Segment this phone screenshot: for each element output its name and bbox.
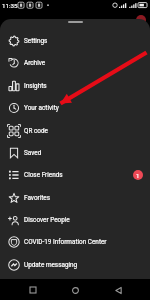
- staticText: Close Friends: [24, 171, 63, 179]
- button[interactable]: Discover People: [0, 209, 150, 231]
- button[interactable]: Settings: [0, 30, 150, 52]
- button[interactable]: Your activity: [0, 97, 150, 119]
- staticText: QR code: [24, 127, 48, 135]
- button[interactable]: Home: [65, 280, 85, 300]
- button[interactable]: QR code: [0, 120, 150, 142]
- button[interactable]: Insights: [0, 75, 150, 97]
- staticText: 1: [136, 172, 140, 179]
- staticText: Discover People: [24, 216, 70, 224]
- staticText: Your activity: [24, 104, 59, 112]
- button[interactable]: Recents: [23, 280, 43, 300]
- button[interactable]: Back: [108, 280, 128, 300]
- button[interactable]: COVID-19 Information Center: [0, 231, 150, 253]
- staticText: Update messaging: [24, 261, 78, 269]
- staticText: Insights: [24, 82, 47, 90]
- button[interactable]: Favorites: [0, 187, 150, 209]
- button[interactable]: Update messaging: [0, 254, 150, 276]
- button[interactable]: Close Friends: [0, 164, 150, 186]
- button[interactable]: Archive: [0, 52, 150, 74]
- staticText: 11:35: [2, 2, 18, 9]
- staticText: COVID-19 Information Center: [24, 238, 107, 246]
- staticText: Settings: [24, 37, 48, 45]
- button[interactable]: Saved: [0, 142, 150, 164]
- staticText: Archive: [24, 59, 46, 67]
- staticText: Saved: [24, 149, 42, 157]
- staticText: Favorites: [24, 194, 51, 202]
